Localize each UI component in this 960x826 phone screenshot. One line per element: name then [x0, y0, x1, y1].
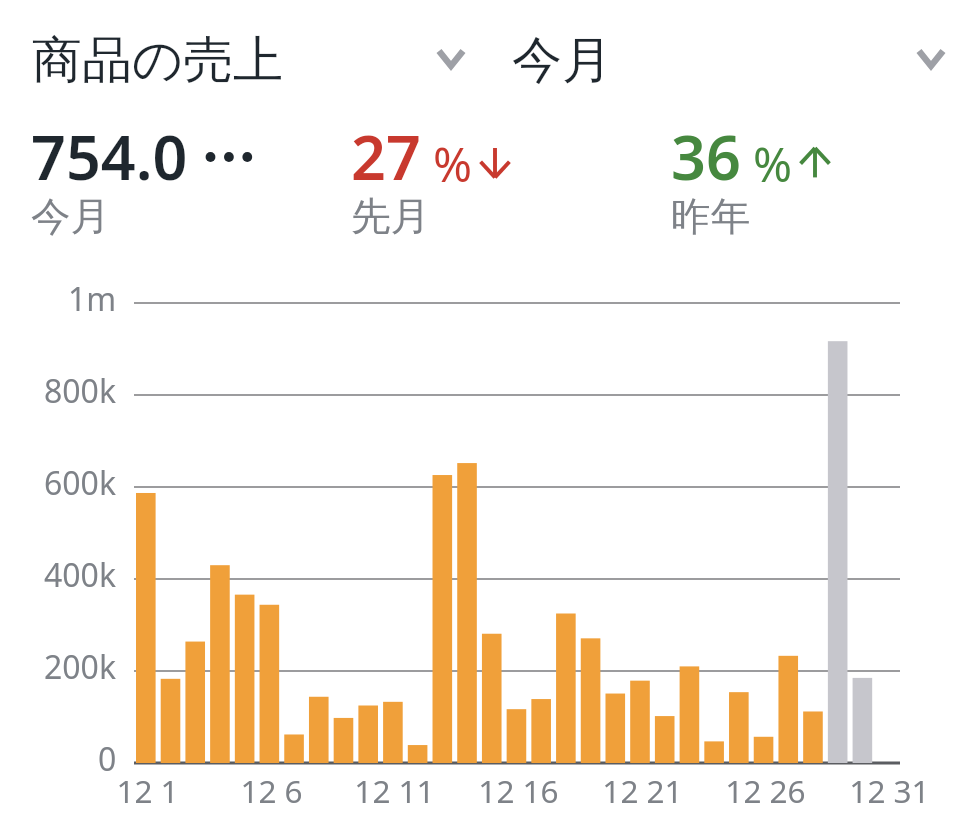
staticText: 12 11: [354, 769, 435, 812]
staticText: %: [753, 132, 793, 196]
staticText: 27: [351, 115, 421, 198]
staticText: 12 16: [478, 769, 559, 812]
other: 期間選択: [901, 30, 960, 90]
button[interactable]: 27: [351, 115, 511, 248]
other: メトリック選択: [421, 30, 481, 90]
staticText: %: [433, 132, 473, 196]
staticText: 754.0: [31, 115, 188, 198]
button[interactable]: 36: [671, 115, 831, 248]
staticText: 先月: [351, 192, 430, 242]
button[interactable]: 商品の売上: [14, 18, 481, 102]
staticText: 12 26: [725, 769, 806, 812]
staticText: 12 31: [849, 769, 930, 812]
staticText: 400k: [44, 553, 117, 597]
staticText: 今月: [512, 29, 612, 92]
staticText: 今月: [31, 192, 110, 242]
button[interactable]: 754.0: [31, 115, 258, 248]
staticText: 12 6: [240, 769, 303, 812]
staticText: 12 21: [602, 769, 683, 812]
staticText: 0: [98, 737, 117, 781]
button[interactable]: 今月: [494, 18, 960, 102]
staticText: 12 1: [116, 769, 179, 812]
staticText: 600k: [44, 461, 117, 505]
staticText: 商品の売上: [32, 29, 284, 92]
staticText: 1m: [68, 277, 117, 321]
staticText: 800k: [44, 369, 117, 413]
staticText: 昨年: [671, 192, 750, 242]
staticText: 36: [671, 115, 741, 198]
staticText: 200k: [44, 645, 117, 689]
